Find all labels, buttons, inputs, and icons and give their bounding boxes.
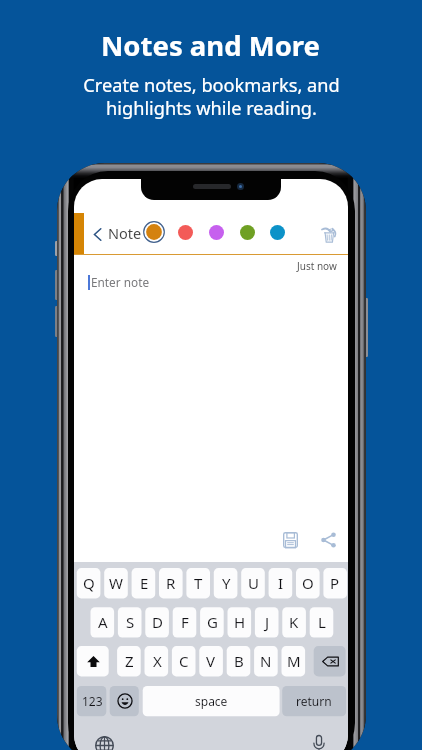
button[interactable]: M [282, 646, 306, 676]
button[interactable]: Delete note [321, 226, 337, 243]
staticText: N [260, 651, 272, 671]
button[interactable]: D [145, 607, 169, 637]
staticText: G [207, 612, 218, 632]
button[interactable]: Save note [283, 532, 298, 548]
staticText: Just now [297, 259, 337, 273]
staticText: M [287, 651, 301, 671]
button[interactable]: A [91, 607, 115, 637]
button[interactable]: P [323, 568, 347, 598]
staticText: Create notes, bookmarks, and highlights … [83, 73, 340, 121]
staticText: A [98, 612, 108, 632]
button[interactable]: Emoji [110, 686, 139, 716]
button[interactable]: W [104, 568, 128, 598]
button[interactable]: X [145, 646, 169, 676]
button[interactable]: space [143, 686, 280, 716]
staticText: O [302, 573, 314, 593]
button[interactable]: Change language [95, 736, 114, 750]
staticText: Y [222, 573, 231, 593]
staticText: L [318, 612, 326, 632]
staticText: E [140, 573, 149, 593]
button[interactable]: Purple [209, 225, 224, 240]
button[interactable]: C [172, 646, 196, 676]
button[interactable]: N [254, 646, 278, 676]
button[interactable]: Back [90, 227, 105, 242]
staticText: T [194, 573, 203, 593]
staticText: Note [108, 223, 142, 243]
button[interactable]: Backspace [314, 646, 346, 676]
staticText: J [265, 612, 270, 632]
staticText: Z [125, 651, 134, 671]
staticText: D [152, 612, 163, 632]
staticText: F [181, 612, 189, 632]
button[interactable]: V [199, 646, 223, 676]
staticText: C [179, 651, 189, 671]
staticText: H [234, 612, 246, 632]
button[interactable]: K [282, 607, 306, 637]
button[interactable]: Share note [321, 532, 336, 548]
button[interactable]: Blue [270, 225, 285, 240]
button[interactable]: F [173, 607, 197, 637]
staticText: Enter note [91, 274, 150, 290]
staticText: U [248, 573, 259, 593]
button[interactable]: H [228, 607, 252, 637]
staticText: P [330, 573, 340, 593]
button[interactable]: Z [117, 646, 141, 676]
button[interactable]: E [132, 568, 156, 598]
button[interactable]: return [282, 686, 346, 716]
button[interactable]: 123 [77, 686, 107, 716]
button[interactable]: T [186, 568, 210, 598]
staticText: X [153, 651, 162, 671]
button[interactable]: Y [214, 568, 238, 598]
button[interactable]: S [118, 607, 142, 637]
staticText: I [278, 573, 284, 593]
button[interactable]: Dictation [311, 734, 327, 750]
button[interactable]: Q [77, 568, 101, 598]
button[interactable]: B [227, 646, 251, 676]
button[interactable]: Red [178, 225, 193, 240]
button[interactable]: Shift [77, 646, 109, 676]
staticText: V [206, 651, 216, 671]
staticText: S [126, 612, 135, 632]
staticText: W [109, 573, 123, 593]
staticText: Notes and More [101, 27, 321, 64]
button[interactable]: G [200, 607, 224, 637]
button[interactable]: L [310, 607, 334, 637]
staticText: 123 [82, 693, 103, 709]
button[interactable]: Orange colour [143, 221, 165, 243]
staticText: B [234, 651, 244, 671]
staticText: K [289, 612, 299, 632]
button[interactable]: O [296, 568, 320, 598]
staticText: return [296, 693, 332, 709]
button[interactable]: R [159, 568, 183, 598]
button[interactable]: Green [240, 225, 255, 240]
button[interactable]: J [255, 607, 279, 637]
staticText: space [195, 693, 228, 709]
button[interactable]: I [269, 568, 293, 598]
button[interactable]: U [241, 568, 265, 598]
staticText: R [166, 573, 176, 593]
staticText: Q [83, 573, 95, 593]
